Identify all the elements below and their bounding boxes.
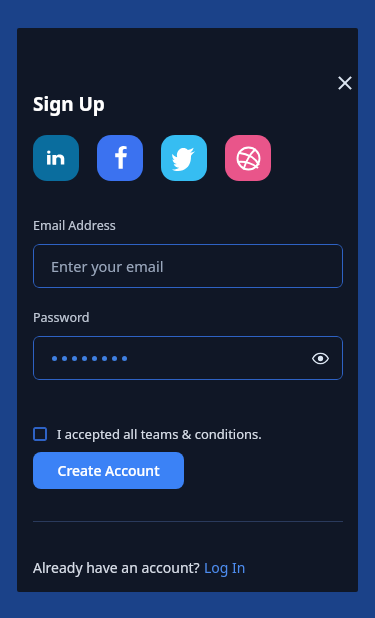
staticText: I accepted all teams & conditions. — [57, 425, 262, 443]
button[interactable]: Twitter — [161, 135, 207, 181]
button[interactable]: Dribbble — [225, 135, 271, 181]
staticText: Sign Up — [33, 91, 105, 117]
button[interactable]: Facebook — [97, 135, 143, 181]
staticText: Enter your email — [51, 256, 164, 276]
button[interactable]: Log In — [204, 558, 246, 577]
button[interactable]: Show password — [33, 336, 343, 380]
button[interactable]: Create Account — [33, 452, 184, 489]
button[interactable]: Close — [327, 65, 358, 101]
button[interactable]: Show password — [305, 343, 335, 373]
staticText: Log In — [204, 558, 246, 577]
staticText: Create Account — [57, 461, 160, 480]
button[interactable]: Enter your email — [33, 244, 343, 288]
staticText: Email Address — [33, 217, 116, 234]
button[interactable]: LinkedIn — [33, 135, 79, 181]
button[interactable]: I accepted all teams & conditions. — [33, 421, 262, 447]
staticText: Password — [33, 309, 90, 326]
staticText: Already have an account? — [33, 558, 204, 577]
